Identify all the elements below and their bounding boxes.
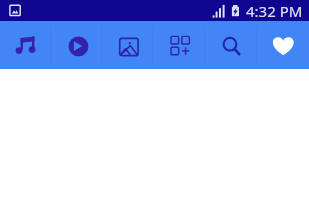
button[interactable]: Gallery: [102, 21, 153, 69]
staticText: 4:32 PM: [246, 1, 303, 21]
button[interactable]: Music: [0, 21, 51, 69]
button[interactable]: Play: [51, 21, 102, 69]
button[interactable]: Add: [153, 21, 205, 69]
button[interactable]: Search: [205, 21, 257, 69]
button[interactable]: Favorite: [257, 21, 309, 69]
